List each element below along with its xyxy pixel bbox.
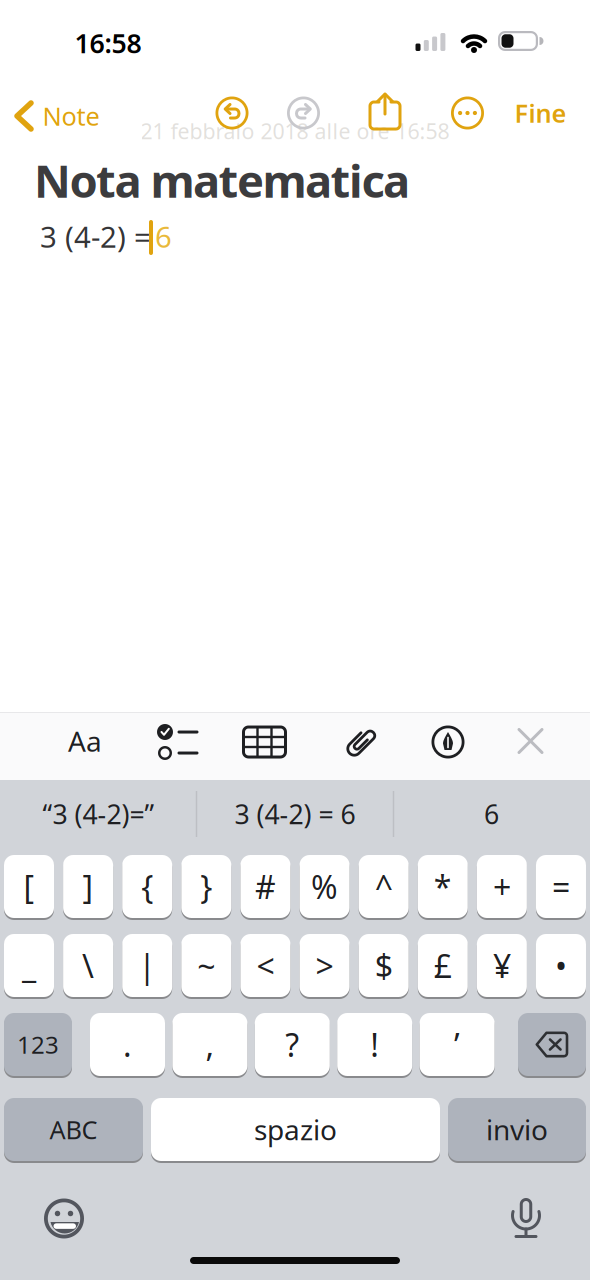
staticText: 123 <box>17 1029 59 1060</box>
staticText: “3 (4-2)=” <box>42 796 154 832</box>
button[interactable]: $ <box>359 934 409 997</box>
staticText: ^ <box>375 865 393 908</box>
button[interactable]: invio <box>448 1098 586 1161</box>
button[interactable]: 3 (4-2) = 6 <box>199 782 391 846</box>
staticText: ~ <box>197 944 215 987</box>
button[interactable]: ? <box>255 1013 330 1076</box>
button[interactable]: # <box>240 855 290 918</box>
button[interactable]: ^ <box>359 855 409 918</box>
button[interactable]: Undo <box>214 95 250 131</box>
button[interactable]: “3 (4-2)=” <box>2 782 194 846</box>
staticText: { <box>141 865 153 908</box>
button[interactable]: ’ <box>420 1013 495 1076</box>
button[interactable]: 123 <box>4 1013 72 1076</box>
button[interactable]: _ <box>4 934 54 997</box>
button[interactable]: % <box>300 855 350 918</box>
staticText: * <box>434 865 452 908</box>
staticText: | <box>138 944 156 987</box>
button[interactable]: ~ <box>181 934 231 997</box>
button[interactable]: [ <box>4 855 54 918</box>
staticText: ] <box>83 865 94 908</box>
staticText: Fine <box>514 96 566 130</box>
button[interactable]: Attach <box>349 725 372 758</box>
staticText: # <box>255 865 276 908</box>
button[interactable]: Redo <box>285 95 321 131</box>
button[interactable]: Delete <box>518 1013 586 1076</box>
button[interactable]: = <box>536 855 586 918</box>
staticText: spazio <box>254 1111 337 1148</box>
staticText: < <box>256 944 274 987</box>
button[interactable]: Markup <box>431 725 464 758</box>
staticText: _ <box>22 944 36 987</box>
button[interactable]: More <box>449 95 485 131</box>
staticText: . <box>123 1023 132 1066</box>
staticText: Nota matematica <box>34 150 410 210</box>
button[interactable]: ABC <box>4 1098 143 1161</box>
button[interactable]: } <box>181 855 231 918</box>
button[interactable]: Format <box>68 722 102 760</box>
staticText: • <box>555 944 567 987</box>
staticText: } <box>200 865 212 908</box>
button[interactable]: Emoji <box>44 1198 84 1238</box>
staticText: ¥ <box>493 944 511 987</box>
button[interactable]: spazio <box>151 1098 440 1161</box>
button[interactable]: \ <box>63 934 113 997</box>
button[interactable]: • <box>536 934 586 997</box>
staticText: Aa <box>68 722 102 760</box>
staticText: 6 <box>484 796 499 832</box>
staticText: > <box>316 944 334 987</box>
button[interactable]: Back <box>14 99 99 133</box>
staticText: + <box>493 865 511 908</box>
button[interactable]: ! <box>337 1013 412 1076</box>
button[interactable]: ¥ <box>477 934 527 997</box>
staticText: = <box>552 865 570 908</box>
button[interactable]: . <box>90 1013 165 1076</box>
button[interactable]: < <box>240 934 290 997</box>
staticText: invio <box>486 1111 548 1148</box>
staticText: 21 febbraio 2018 alle ore 16:58 <box>140 117 449 145</box>
button[interactable]: * <box>418 855 468 918</box>
staticText: ABC <box>49 1113 97 1146</box>
button[interactable]: + <box>477 855 527 918</box>
button[interactable]: | <box>122 934 172 997</box>
button[interactable]: Dictate <box>512 1197 539 1239</box>
staticText: ’ <box>454 1023 460 1066</box>
button[interactable]: Share <box>369 93 401 131</box>
button[interactable]: Fine <box>514 96 566 130</box>
button[interactable]: Checklist <box>157 723 197 761</box>
staticText: ? <box>285 1023 299 1066</box>
button[interactable]: 6 <box>395 782 587 846</box>
staticText: 16:58 <box>74 25 141 61</box>
button[interactable]: £ <box>418 934 468 997</box>
button[interactable]: ] <box>63 855 113 918</box>
staticText: 6 <box>155 217 172 256</box>
staticText: \ <box>82 944 94 987</box>
staticText: [ <box>23 865 34 908</box>
button[interactable]: , <box>172 1013 247 1076</box>
staticText: £ <box>434 944 452 987</box>
staticText: 3 (4-2) = 6 <box>234 796 355 832</box>
button[interactable]: { <box>122 855 172 918</box>
staticText: $ <box>375 944 393 987</box>
button[interactable]: Table <box>242 725 287 758</box>
staticText: ! <box>370 1023 379 1066</box>
staticText: , <box>205 1023 214 1066</box>
staticText: % <box>311 865 338 908</box>
button[interactable]: Close <box>517 728 543 754</box>
button[interactable]: > <box>300 934 350 997</box>
staticText: 3 (4-2) = <box>40 217 151 256</box>
staticText: Note <box>42 99 99 133</box>
